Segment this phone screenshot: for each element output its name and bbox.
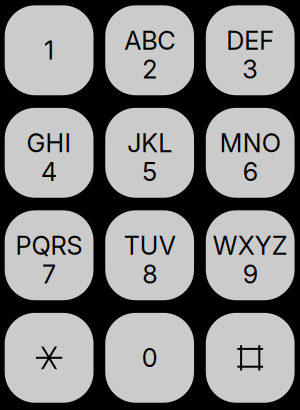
staticText: TUV	[124, 230, 176, 261]
staticText: 8	[142, 259, 157, 290]
staticText: 4	[41, 156, 57, 187]
staticText: PQRS	[16, 230, 83, 261]
button[interactable]: PQRS	[5, 210, 93, 300]
button[interactable]: Pound	[206, 313, 295, 403]
staticText: 9	[243, 259, 258, 290]
staticText: WXYZ	[213, 230, 288, 261]
button[interactable]: 0	[105, 313, 194, 403]
button[interactable]: GHI	[5, 108, 93, 198]
staticText: GHI	[27, 128, 72, 158]
staticText: 5	[142, 156, 157, 187]
button[interactable]: WXYZ	[206, 210, 295, 300]
staticText: MNO	[220, 128, 281, 158]
button[interactable]: Star	[5, 313, 93, 403]
button[interactable]: MNO	[206, 108, 295, 198]
staticText: 0	[142, 342, 158, 373]
staticText: 6	[243, 156, 258, 187]
staticText: DEF	[226, 25, 274, 56]
button[interactable]: 1	[5, 5, 93, 95]
button[interactable]: ABC	[105, 5, 194, 95]
staticText: ABC	[124, 25, 175, 56]
staticText: 2	[142, 54, 157, 85]
button[interactable]: JKL	[105, 108, 194, 198]
staticText: 3	[242, 54, 258, 85]
staticText: JKL	[127, 128, 172, 158]
staticText: 7	[42, 259, 56, 290]
staticText: 1	[44, 35, 54, 66]
button[interactable]: TUV	[105, 210, 194, 300]
button[interactable]: DEF	[206, 5, 295, 95]
